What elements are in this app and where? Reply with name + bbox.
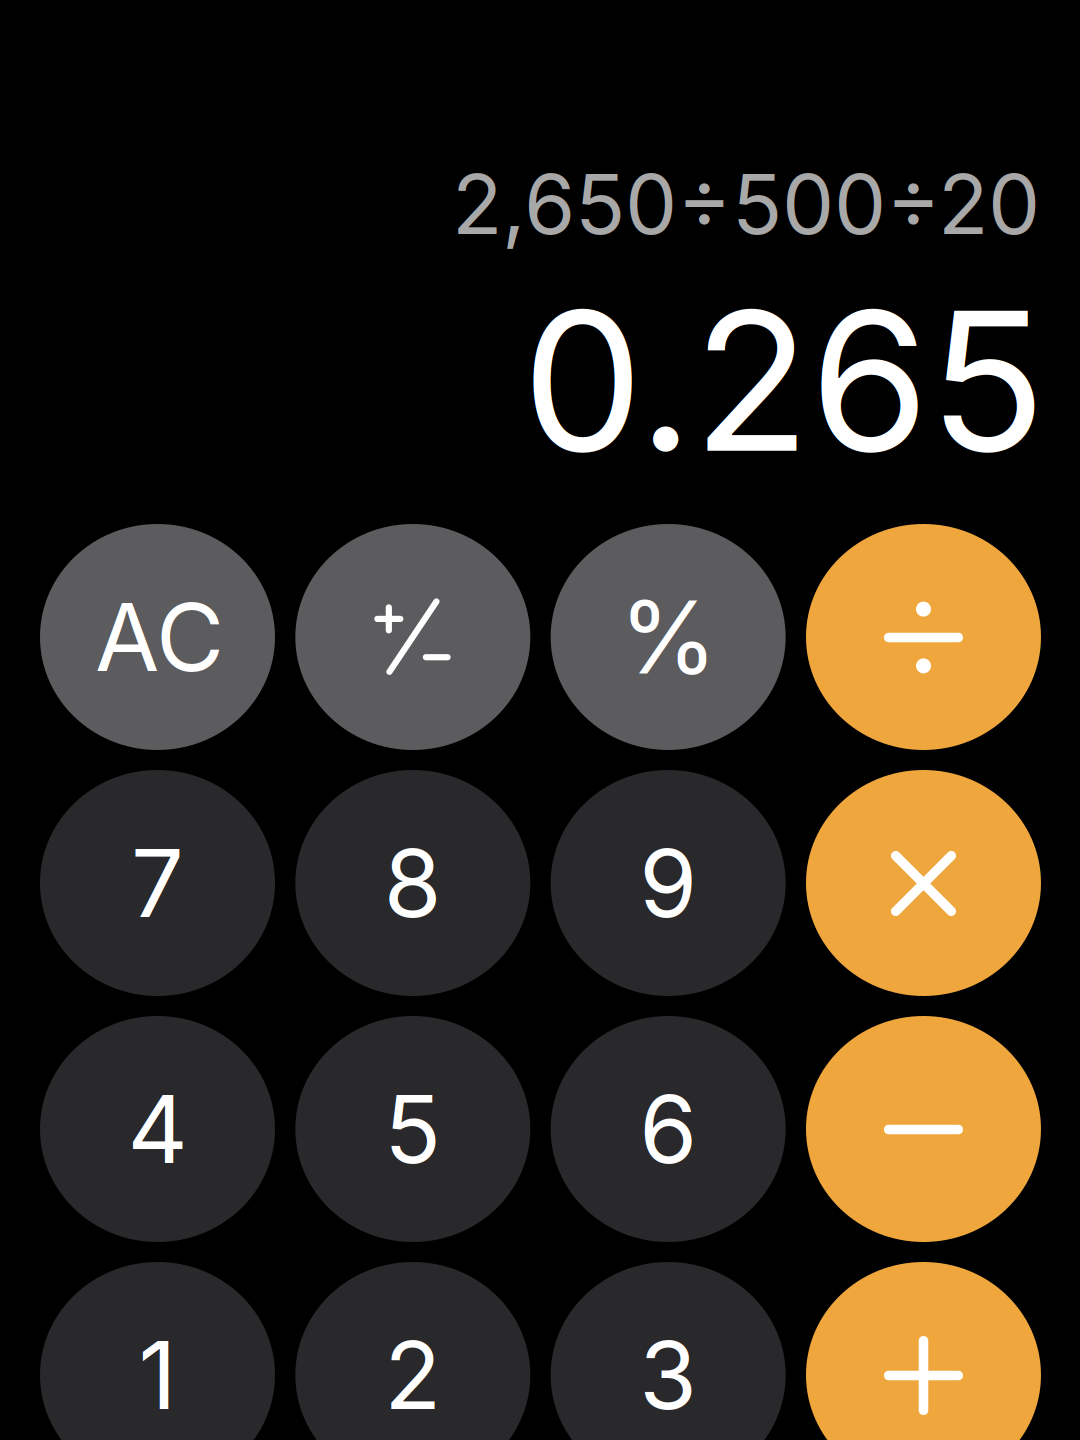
button[interactable]: 6 [551,1016,786,1242]
button[interactable]: Subtract [806,1016,1041,1242]
staticText: 3 [639,1318,697,1431]
staticText: % [619,576,717,697]
button[interactable]: 2 [295,1262,530,1440]
staticText: 5 [384,1072,441,1185]
button[interactable]: 8 [295,770,530,996]
staticText: 9 [639,826,697,939]
button[interactable]: Toggle sign [295,524,530,750]
staticText: 6 [639,1072,697,1185]
staticText: 2 [384,1318,441,1431]
button[interactable]: 9 [551,770,786,996]
button[interactable]: 7 [40,770,275,996]
button[interactable]: 5 [295,1016,530,1242]
staticText: 2,650÷500÷20 [452,154,1040,254]
staticText: 7 [131,826,184,939]
staticText: 1 [138,1318,176,1431]
staticText: 4 [127,1072,187,1185]
staticText: 8 [384,826,442,939]
button[interactable]: 1 [40,1262,275,1440]
button[interactable]: Add [806,1262,1041,1440]
staticText: 0.265 [522,265,1046,497]
button[interactable]: Multiply [806,770,1041,996]
button[interactable]: 4 [40,1016,275,1242]
button[interactable]: 3 [551,1262,786,1440]
button[interactable]: Divide [806,524,1041,750]
button[interactable]: % [551,524,786,750]
staticText: AC [95,580,224,693]
button[interactable]: AC [40,524,275,750]
